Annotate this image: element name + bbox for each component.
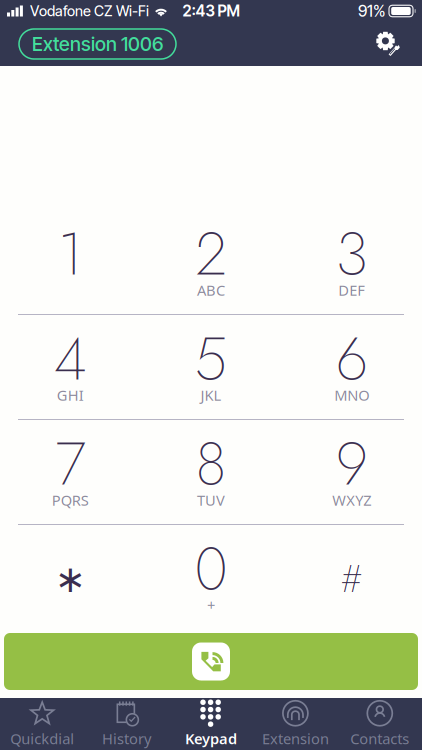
staticText: 6 — [336, 317, 368, 401]
button[interactable]: 1 — [0, 210, 141, 314]
staticText: 3 — [336, 212, 368, 296]
button[interactable]: Contacts — [338, 698, 422, 750]
staticText: 4 — [54, 317, 87, 401]
button[interactable]: 4 — [0, 315, 141, 419]
staticText: DEF — [338, 280, 365, 300]
staticText: 8 — [195, 422, 226, 506]
staticText: Extension — [262, 729, 329, 748]
staticText: Keypad — [185, 729, 237, 748]
button[interactable]: ∗ — [0, 525, 141, 629]
staticText: ∗ — [55, 557, 86, 601]
staticText: 5 — [194, 317, 227, 401]
staticText: History — [102, 729, 151, 748]
staticText: 91% — [358, 1, 385, 21]
button[interactable]: History — [84, 698, 169, 750]
button[interactable]: # — [281, 525, 422, 629]
button[interactable]: 6 — [281, 315, 422, 419]
staticText: 0 — [194, 527, 227, 611]
button[interactable]: 8 — [141, 420, 281, 524]
button[interactable]: 5 — [141, 315, 281, 419]
button[interactable]: 7 — [0, 420, 141, 524]
staticText: Contacts — [350, 729, 409, 748]
button[interactable]: 9 — [281, 420, 422, 524]
staticText: 7 — [55, 422, 85, 506]
staticText: # — [341, 552, 363, 606]
staticText: 2 — [195, 212, 226, 296]
staticText: Extension 1006 — [32, 32, 163, 56]
staticText: PQRS — [52, 490, 89, 510]
button[interactable]: Extension — [253, 698, 338, 750]
staticText: TUV — [197, 490, 225, 510]
button[interactable]: Quickdial — [0, 698, 84, 750]
staticText: JKL — [200, 385, 221, 405]
staticText: ABC — [197, 280, 225, 300]
staticText: MNO — [334, 385, 369, 405]
button[interactable]: 3 — [281, 210, 422, 314]
button[interactable]: Keypad — [169, 698, 253, 750]
staticText: Vodafone CZ Wi-Fi — [30, 2, 149, 20]
button[interactable]: 0 — [141, 525, 281, 629]
button[interactable]: 2 — [141, 210, 281, 314]
staticText: + — [207, 595, 215, 615]
staticText: 1 — [58, 212, 83, 296]
button[interactable]: Call — [4, 633, 418, 690]
button[interactable]: Settings — [376, 32, 400, 56]
button[interactable]: Extension 1006 — [19, 29, 176, 59]
staticText: WXYZ — [332, 490, 371, 510]
staticText: 9 — [336, 422, 368, 506]
staticText: Quickdial — [10, 729, 74, 748]
staticText: GHI — [57, 385, 84, 405]
staticText: 2:43 PM — [182, 2, 239, 20]
